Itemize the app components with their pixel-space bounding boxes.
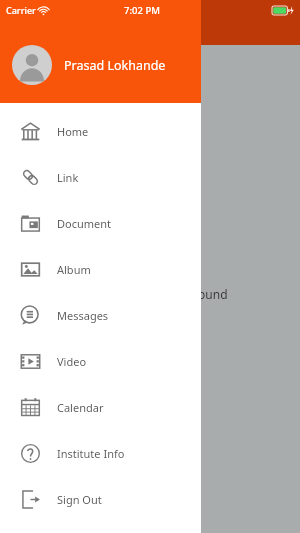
button[interactable]: Prasad Lokhande [0, 0, 201, 103]
staticText: Sign Out [57, 492, 102, 507]
staticText: Messages [57, 308, 109, 323]
staticText: Link [57, 170, 79, 185]
button[interactable]: Sign Out [0, 476, 201, 522]
staticText: Prasad Lokhande [64, 57, 166, 74]
button[interactable]: Link [0, 154, 201, 200]
staticText: Document [57, 216, 112, 231]
button[interactable]: Messages [0, 292, 201, 338]
staticText: Home [57, 124, 89, 139]
staticText: Carrier [6, 4, 36, 16]
staticText: 7:02 PM [124, 4, 160, 17]
button[interactable]: Video [0, 338, 201, 384]
staticText: Album [57, 262, 91, 277]
button[interactable]: Institute Info [0, 430, 201, 476]
button[interactable]: Home [0, 108, 201, 154]
button[interactable]: Album [0, 246, 201, 292]
staticText: Video [57, 354, 87, 369]
button[interactable]: Document [0, 200, 201, 246]
button[interactable]: Calendar [0, 384, 201, 430]
staticText: Institute Info [57, 446, 125, 461]
staticText: Not Found [168, 286, 228, 302]
staticText: Calendar [57, 400, 104, 415]
